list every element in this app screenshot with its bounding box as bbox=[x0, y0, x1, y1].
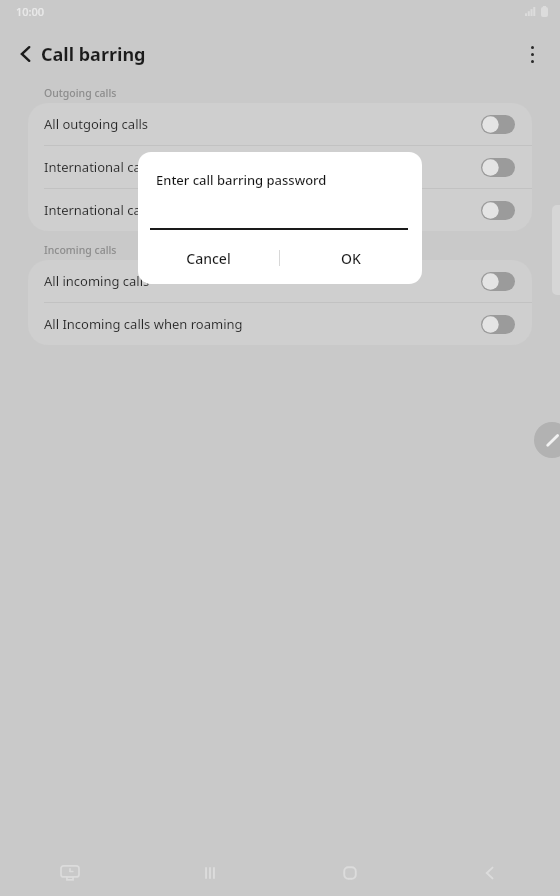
button[interactable]: Back bbox=[6, 34, 46, 74]
button[interactable]: International calls except to home bbox=[28, 189, 532, 231]
staticText: All incoming calls bbox=[44, 272, 473, 290]
button[interactable]: All incoming calls bbox=[28, 260, 532, 302]
button[interactable]: Edit bbox=[534, 422, 560, 458]
staticText: All Incoming calls when roaming bbox=[44, 315, 473, 333]
staticText: Call barring bbox=[41, 42, 146, 67]
staticText: International calls bbox=[44, 158, 473, 176]
staticText: Enter call barring password bbox=[156, 171, 327, 189]
button[interactable]: All Incoming calls when roaming bbox=[28, 303, 532, 345]
staticText: Cancel bbox=[186, 249, 231, 268]
button[interactable]: OK bbox=[280, 235, 422, 281]
staticText: Outgoing calls bbox=[44, 86, 117, 100]
staticText: International calls except to home bbox=[44, 201, 473, 219]
button[interactable]: Cancel bbox=[138, 235, 279, 281]
staticText: All outgoing calls bbox=[44, 115, 473, 133]
staticText: Incoming calls bbox=[44, 243, 117, 257]
staticText: 10:00 bbox=[16, 4, 45, 19]
button[interactable]: More options bbox=[512, 34, 552, 74]
button[interactable]: International calls bbox=[28, 146, 532, 188]
button[interactable]: All outgoing calls bbox=[28, 103, 532, 145]
staticText: OK bbox=[341, 249, 361, 268]
